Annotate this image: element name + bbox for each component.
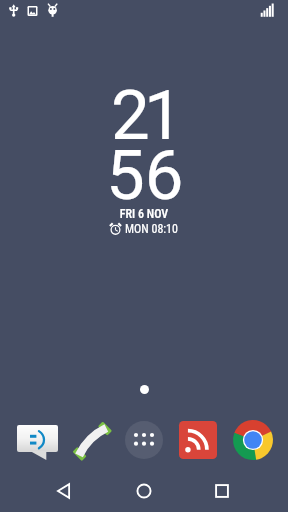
button[interactable]: Chrome	[233, 420, 273, 460]
staticText: 2	[111, 75, 150, 156]
staticText: 1	[144, 75, 183, 156]
button[interactable]: RSS Reader	[179, 421, 217, 459]
button[interactable]: Home	[128, 475, 160, 507]
button[interactable]: Recent apps	[206, 475, 238, 507]
button[interactable]: Apps	[125, 421, 163, 459]
button[interactable]: Back	[48, 475, 80, 507]
button[interactable]: Messaging	[17, 425, 58, 460]
button[interactable]: Phone	[68, 417, 114, 463]
staticText: 56	[106, 135, 184, 216]
staticText: FRI 6 NOV	[0, 207, 288, 221]
staticText: MON 08:10	[125, 222, 178, 236]
